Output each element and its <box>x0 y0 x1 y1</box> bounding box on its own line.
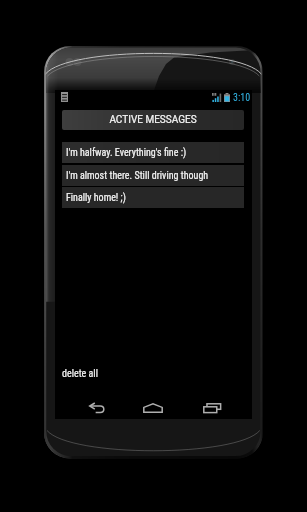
button[interactable]: ACTIVE MESSAGES <box>62 110 244 130</box>
button[interactable]: Back <box>79 395 113 420</box>
staticText: 3:10 <box>233 92 251 104</box>
staticText: ACTIVE MESSAGES <box>109 114 197 126</box>
button[interactable]: Recent apps <box>195 395 229 420</box>
staticText: Finally home! ;) <box>66 192 126 204</box>
staticText: I'm almost there. Still driving though <box>66 170 209 182</box>
button[interactable]: Finally home! ;) <box>62 187 244 208</box>
button[interactable]: I'm halfway. Everything's fine :) <box>62 142 244 163</box>
button[interactable]: delete all <box>60 366 100 382</box>
staticText: delete all <box>62 368 98 380</box>
staticText: I'm halfway. Everything's fine :) <box>66 147 187 159</box>
button[interactable]: I'm almost there. Still driving though <box>62 165 244 186</box>
button[interactable]: Home <box>136 395 170 420</box>
